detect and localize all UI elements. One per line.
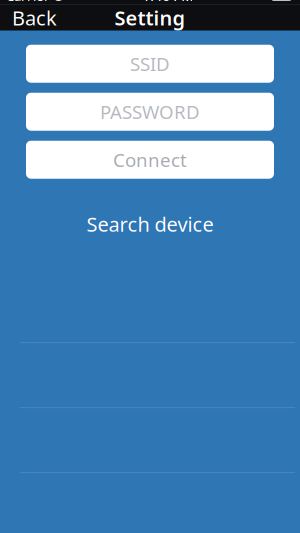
button[interactable]: PASSWORD <box>26 93 274 131</box>
staticText <box>50 0 53 5</box>
staticText: Search device <box>86 211 213 237</box>
button[interactable]: SSID <box>26 45 274 83</box>
staticText: 1:46 PM <box>142 0 193 5</box>
staticText: Carrier <box>6 0 50 5</box>
staticText: Back <box>12 4 57 31</box>
staticText: Setting <box>114 4 185 31</box>
staticText: SSID <box>130 51 170 76</box>
staticText: PASSWORD <box>100 99 200 124</box>
button[interactable]: Search device <box>0 203 300 245</box>
staticText: Connect <box>113 147 187 172</box>
button[interactable]: Connect <box>26 141 274 179</box>
button[interactable]: Back <box>4 0 65 35</box>
